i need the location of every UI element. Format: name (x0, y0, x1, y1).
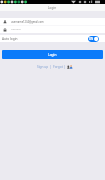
staticText: Login (48, 6, 57, 10)
staticText: Login (48, 53, 57, 57)
button[interactable]: Account (0, 18, 105, 25)
other: Password (3, 28, 7, 32)
staticText: •••••••••••• (11, 28, 21, 31)
button[interactable]: Sign up (37, 65, 49, 69)
staticText: | (49, 65, 53, 69)
staticText: username1234@gmail.com (11, 20, 44, 23)
button[interactable]: Forgot (53, 65, 63, 69)
button[interactable]: Login (2, 50, 103, 59)
button[interactable]: Profile (67, 64, 73, 70)
staticText: Forgot (53, 65, 63, 69)
staticText: ON (89, 37, 94, 41)
staticText: Auto login (2, 37, 18, 41)
staticText: Sign up (37, 65, 49, 69)
button[interactable]: Auto login toggle (88, 36, 99, 42)
staticText: | (63, 65, 66, 69)
button[interactable]: Password (0, 26, 105, 33)
other: Account (3, 20, 7, 24)
button[interactable]: Auto login (0, 35, 105, 42)
